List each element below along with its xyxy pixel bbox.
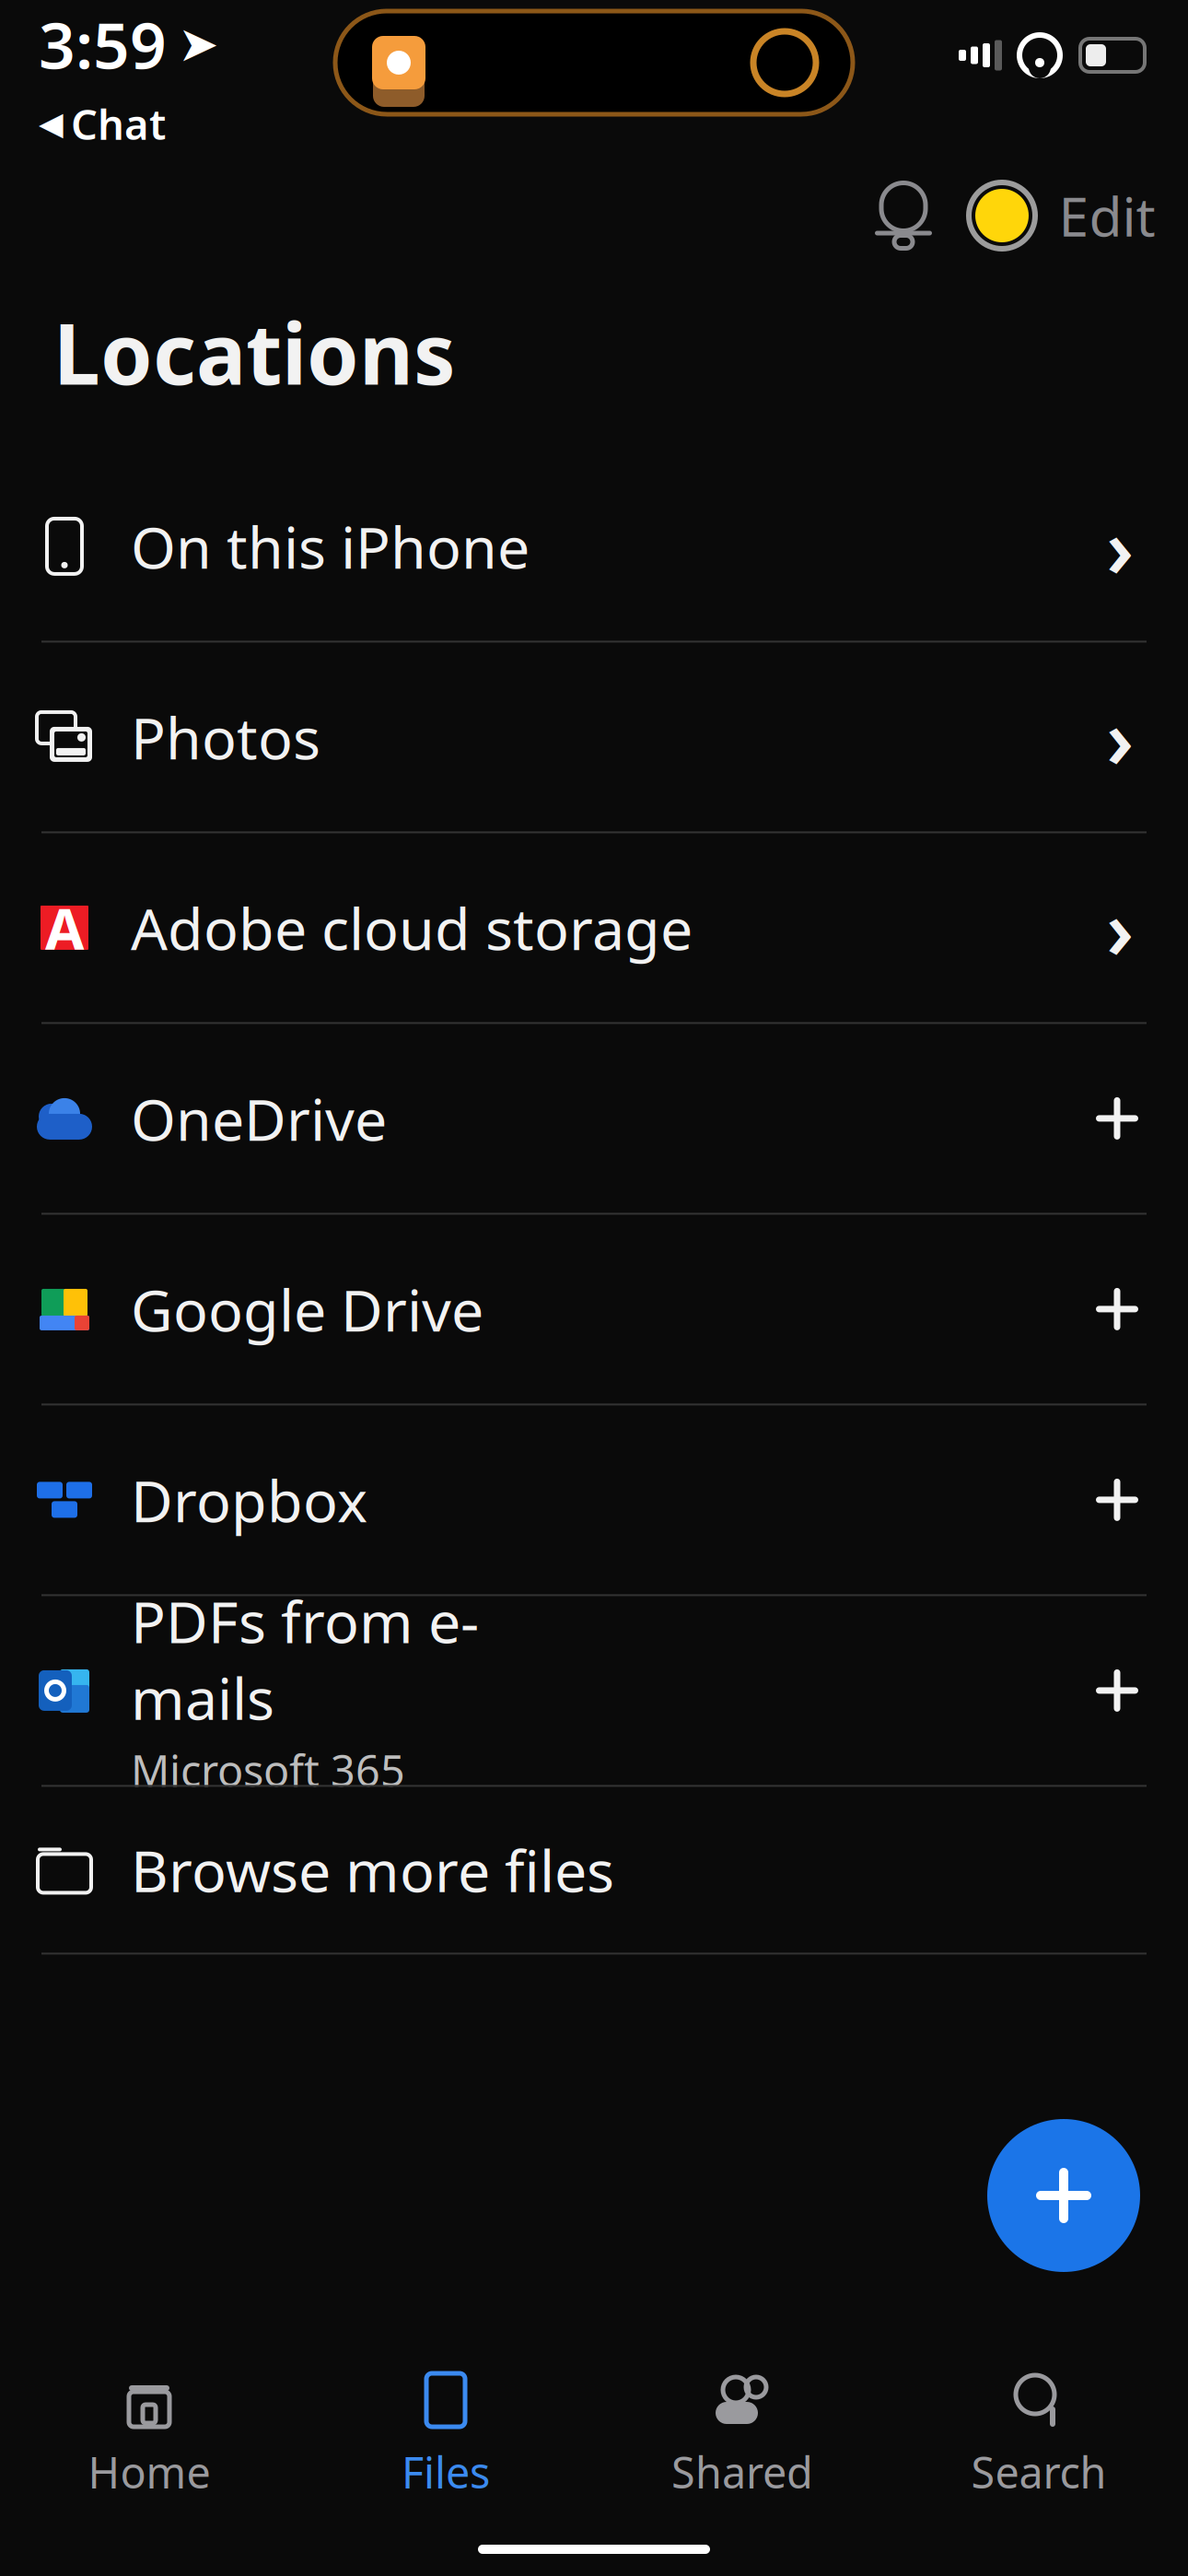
staticText: On this iPhone <box>131 508 530 585</box>
staticText: PDFs from e-mails <box>131 1583 479 1736</box>
button[interactable]: Shared <box>594 2371 891 2500</box>
button[interactable]: Files <box>297 2371 594 2500</box>
button[interactable]: Dropbox <box>0 1405 1188 1594</box>
staticText: Google Drive <box>131 1271 483 1347</box>
staticText: A <box>45 890 84 965</box>
button[interactable]: Google Drive <box>0 1215 1188 1404</box>
staticText: Chat <box>71 96 166 151</box>
button[interactable]: Photos <box>0 643 1188 831</box>
staticText: ➤ <box>178 16 219 72</box>
staticText: Dropbox <box>131 1461 367 1538</box>
staticText: Microsoft 365 <box>131 1741 405 1799</box>
staticText: Files <box>402 2443 490 2500</box>
staticText: Shared <box>671 2443 813 2500</box>
button[interactable]: Home <box>1 2371 297 2500</box>
staticText: Search <box>971 2443 1106 2500</box>
staticText: OneDrive <box>131 1080 387 1157</box>
staticText: › <box>1106 874 1134 982</box>
staticText: Browse more files <box>131 1831 614 1908</box>
button[interactable]: A <box>0 833 1188 1022</box>
staticText: ◀ <box>39 105 64 142</box>
button[interactable]: Edit <box>1050 171 1164 260</box>
staticText: Photos <box>131 699 320 775</box>
staticText: › <box>1106 492 1134 600</box>
staticText: Edit <box>1059 180 1155 251</box>
staticText: › <box>1106 683 1134 791</box>
staticText: Adobe cloud storage <box>131 889 693 966</box>
staticText: 3:59 <box>39 2 167 87</box>
button[interactable]: On this iPhone <box>0 452 1188 641</box>
staticText: Locations <box>53 297 456 408</box>
button[interactable]: Browse more files <box>0 1787 1188 1953</box>
staticText: Home <box>88 2443 210 2500</box>
button[interactable]: Notifications <box>853 171 954 260</box>
button[interactable]: Create new <box>987 2119 1140 2272</box>
button[interactable]: Search <box>891 2371 1187 2500</box>
button[interactable]: ◀ <box>39 96 278 151</box>
button[interactable]: Profile <box>954 171 1050 260</box>
button[interactable]: PDFs from e-mails <box>0 1596 1188 1785</box>
button[interactable]: OneDrive <box>0 1024 1188 1213</box>
